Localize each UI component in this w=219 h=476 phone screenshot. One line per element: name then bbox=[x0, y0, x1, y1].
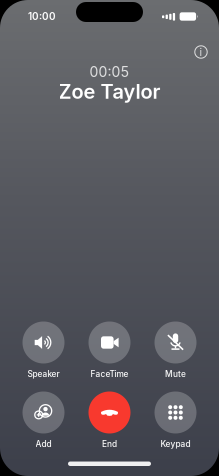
staticText: 00:05 bbox=[89, 63, 129, 80]
staticText: End bbox=[102, 439, 117, 449]
staticText: Add bbox=[35, 439, 51, 449]
button[interactable]: Add bbox=[10, 391, 76, 448]
staticText: Speaker bbox=[27, 369, 59, 379]
button[interactable]: Mute bbox=[142, 321, 208, 378]
button[interactable]: FaceTime bbox=[76, 321, 142, 378]
staticText: Mute bbox=[165, 369, 186, 379]
staticText: i bbox=[199, 45, 202, 58]
staticText: Zoe Taylor bbox=[58, 79, 160, 104]
button[interactable]: Call details bbox=[189, 40, 213, 64]
button[interactable]: Speaker bbox=[10, 321, 76, 378]
button[interactable]: Keypad bbox=[142, 391, 208, 448]
staticText: 10:00 bbox=[28, 10, 56, 22]
button[interactable]: End bbox=[76, 391, 142, 448]
staticText: Keypad bbox=[160, 439, 190, 449]
staticText: FaceTime bbox=[90, 369, 128, 379]
